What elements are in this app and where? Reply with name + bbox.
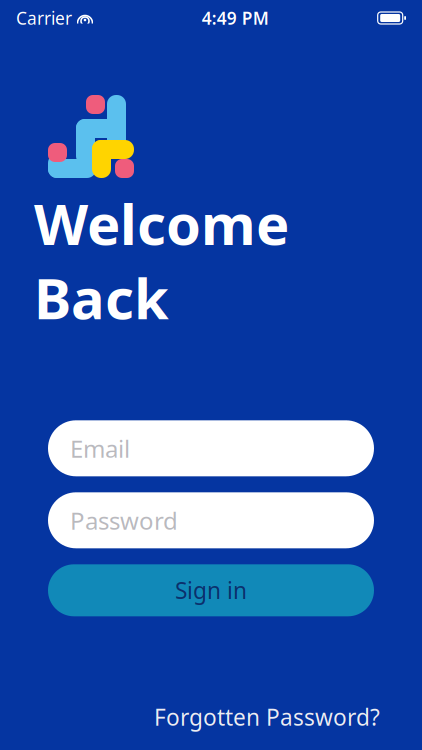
- staticText: Password: [70, 504, 178, 536]
- staticText: Back: [34, 260, 169, 335]
- staticText: 4:49 PM: [202, 6, 269, 29]
- button[interactable]: Sign in: [48, 564, 374, 616]
- staticText: Forgotten Password?: [154, 702, 380, 732]
- button[interactable]: Email: [48, 420, 374, 476]
- staticText: Sign in: [175, 575, 247, 605]
- button[interactable]: Password: [48, 492, 374, 548]
- staticText: Email: [70, 432, 130, 464]
- staticText: Welcome: [34, 186, 289, 260]
- staticText: Carrier: [16, 6, 72, 29]
- button[interactable]: Forgotten Password?: [0, 702, 422, 750]
